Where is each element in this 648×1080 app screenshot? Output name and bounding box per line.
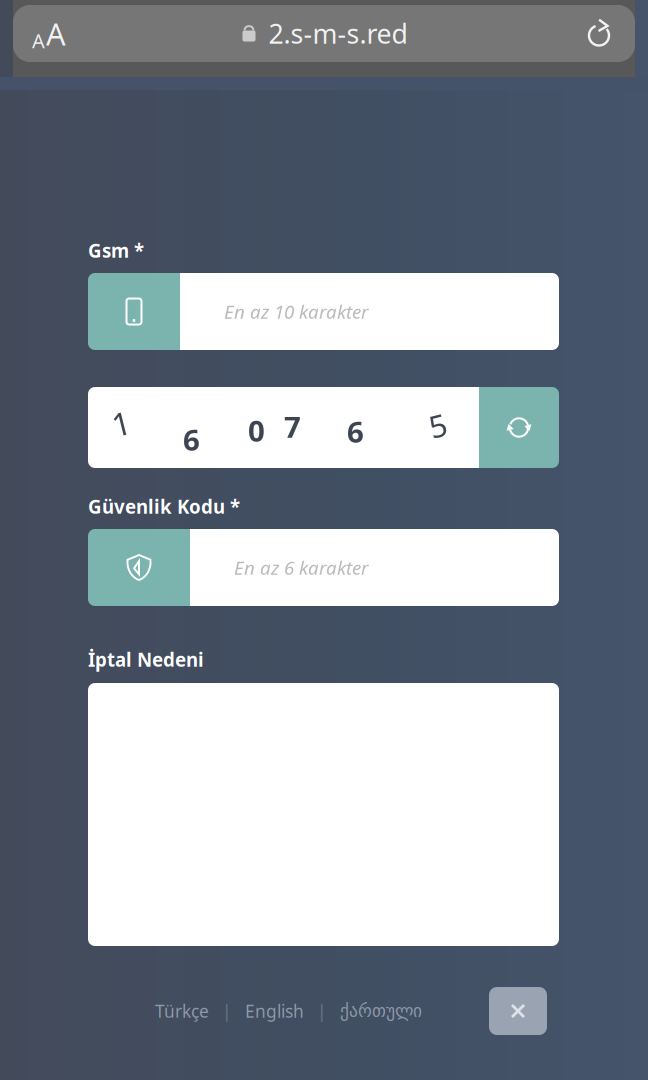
button[interactable]: Refresh captcha [479, 387, 559, 468]
staticText: Gsm * [88, 238, 144, 263]
staticText: English [245, 999, 304, 1022]
button[interactable]: En az 6 karakter [88, 529, 559, 606]
staticText: 7 [284, 407, 301, 446]
staticText: | [222, 999, 232, 1022]
button[interactable]: Türkçe [151, 989, 213, 1032]
button[interactable] [88, 683, 559, 946]
staticText: 0 [248, 411, 265, 450]
button[interactable]: En az 10 karakter [88, 273, 559, 350]
staticText: Güvenlik Kodu * [88, 494, 240, 519]
staticText: 5 [429, 405, 447, 446]
staticText: En az 10 karakter [224, 299, 368, 324]
staticText: 6 [183, 420, 200, 459]
staticText: Türkçe [155, 999, 209, 1022]
staticText: En az 6 karakter [234, 555, 368, 580]
button[interactable]: Close [489, 987, 547, 1035]
staticText: İptal Nedeni [88, 647, 204, 672]
staticText: A [32, 27, 45, 54]
button[interactable]: English [241, 989, 308, 1032]
button[interactable]: Page settings [13, 5, 85, 62]
button[interactable]: Reload [563, 5, 635, 62]
staticText: A [46, 13, 66, 54]
staticText: 2.s-m-s.red [268, 16, 407, 51]
staticText: ქართული [340, 1001, 422, 1021]
staticText: 1 [112, 402, 130, 444]
button[interactable]: ქართული [336, 991, 426, 1031]
staticText: 6 [347, 412, 364, 451]
staticText: | [317, 999, 327, 1022]
